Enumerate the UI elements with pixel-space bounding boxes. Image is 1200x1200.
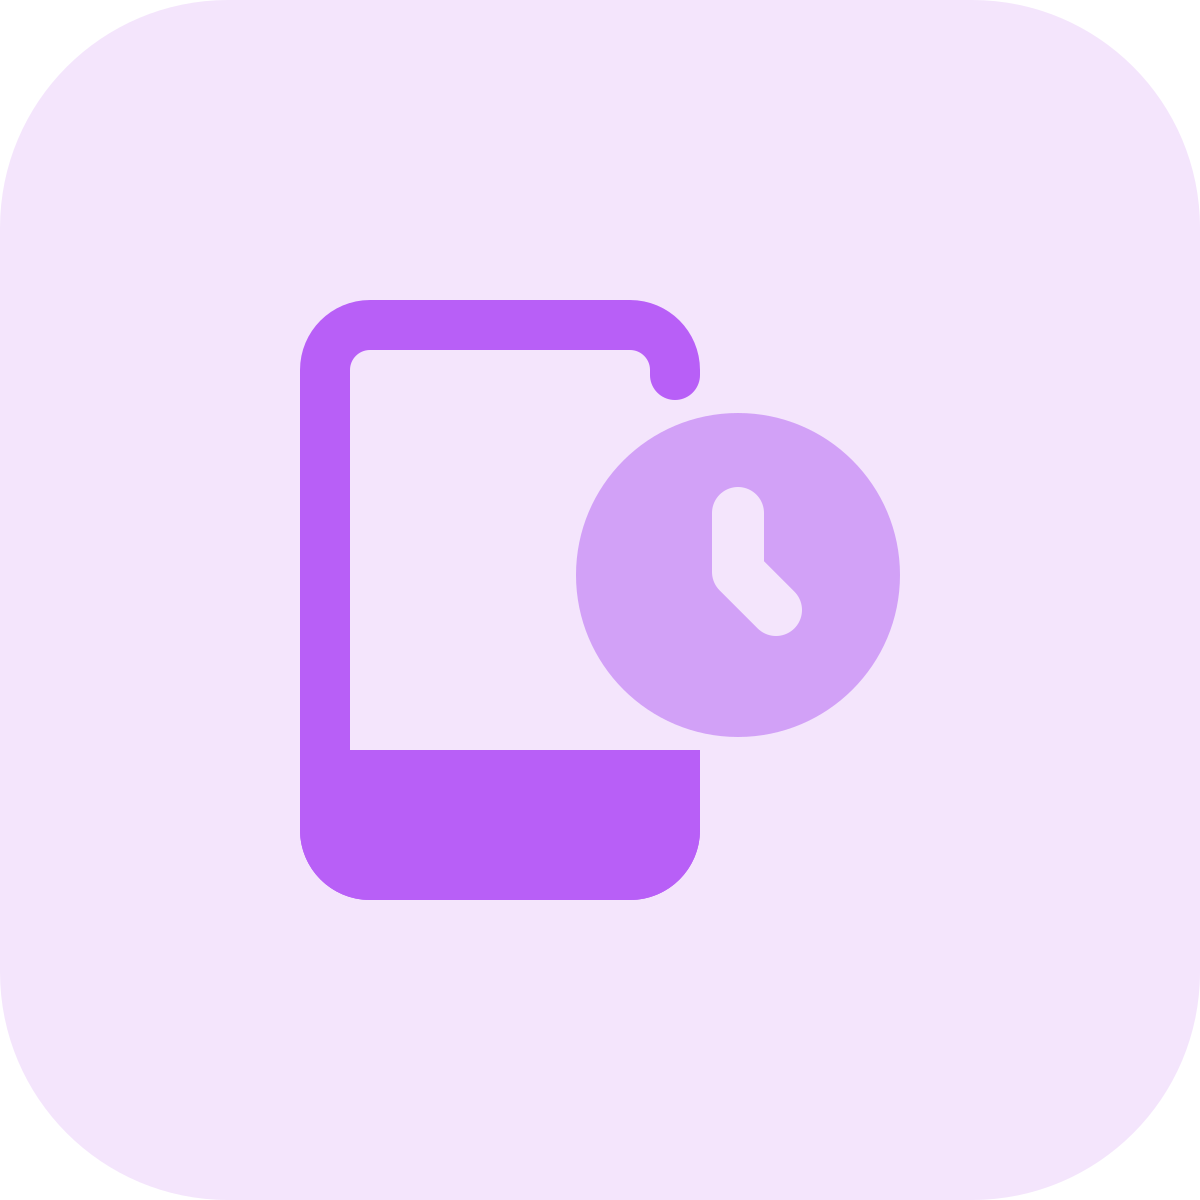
button[interactable]: Screen Time xyxy=(0,0,1200,1200)
